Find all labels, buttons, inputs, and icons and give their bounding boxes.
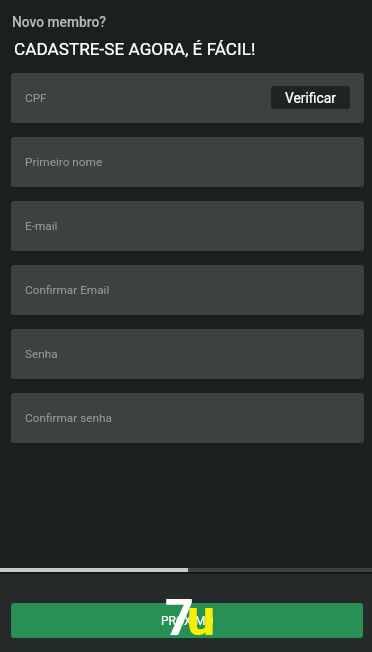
button[interactable]: Primeiro nome: [11, 137, 364, 187]
staticText: Verificar: [285, 90, 336, 106]
staticText: PRÓXIMO: [161, 614, 214, 628]
button[interactable]: Senha: [11, 329, 364, 379]
button[interactable]: PRÓXIMO: [11, 603, 363, 638]
button[interactable]: CPF: [11, 73, 364, 123]
staticText: E-mail: [25, 219, 58, 233]
button[interactable]: E-mail: [11, 201, 364, 251]
staticText: Confirmar senha: [25, 411, 112, 425]
staticText: u: [187, 589, 216, 648]
staticText: CPF: [25, 91, 47, 105]
button[interactable]: Verificar: [271, 86, 350, 109]
staticText: CADASTRE-SE AGORA, É FÁCIL!: [14, 39, 256, 59]
staticText: 7: [165, 589, 194, 648]
button[interactable]: Confirmar Email: [11, 265, 364, 315]
staticText: Primeiro nome: [25, 155, 103, 169]
staticText: Confirmar Email: [25, 283, 110, 297]
button[interactable]: Confirmar senha: [11, 393, 364, 443]
staticText: Novo membro?: [12, 14, 106, 30]
staticText: Senha: [25, 347, 58, 361]
